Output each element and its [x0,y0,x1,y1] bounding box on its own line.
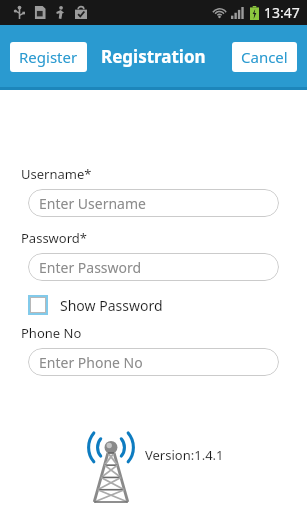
button[interactable]: Show Password [28,295,163,315]
staticText: Cancel [241,47,288,67]
staticText: Enter Username [39,194,146,213]
staticText: Version:1.4.1 [145,446,224,464]
staticText: 13:47 [264,3,300,22]
staticText: Registration [101,45,206,68]
other: Antenna tower [83,424,139,502]
staticText: Username* [21,165,92,183]
staticText: Register [19,47,78,67]
button[interactable]: Enter Username [28,189,279,217]
staticText: Password* [21,229,87,247]
staticText: Enter Password [39,258,142,277]
button[interactable]: Register [10,42,87,72]
staticText: Phone No [21,324,82,342]
staticText: Enter Phone No [39,353,143,372]
button[interactable]: Cancel [232,42,297,72]
button[interactable]: Enter Password [28,253,279,281]
button[interactable]: Enter Phone No [28,348,279,376]
staticText: Show Password [60,296,163,315]
